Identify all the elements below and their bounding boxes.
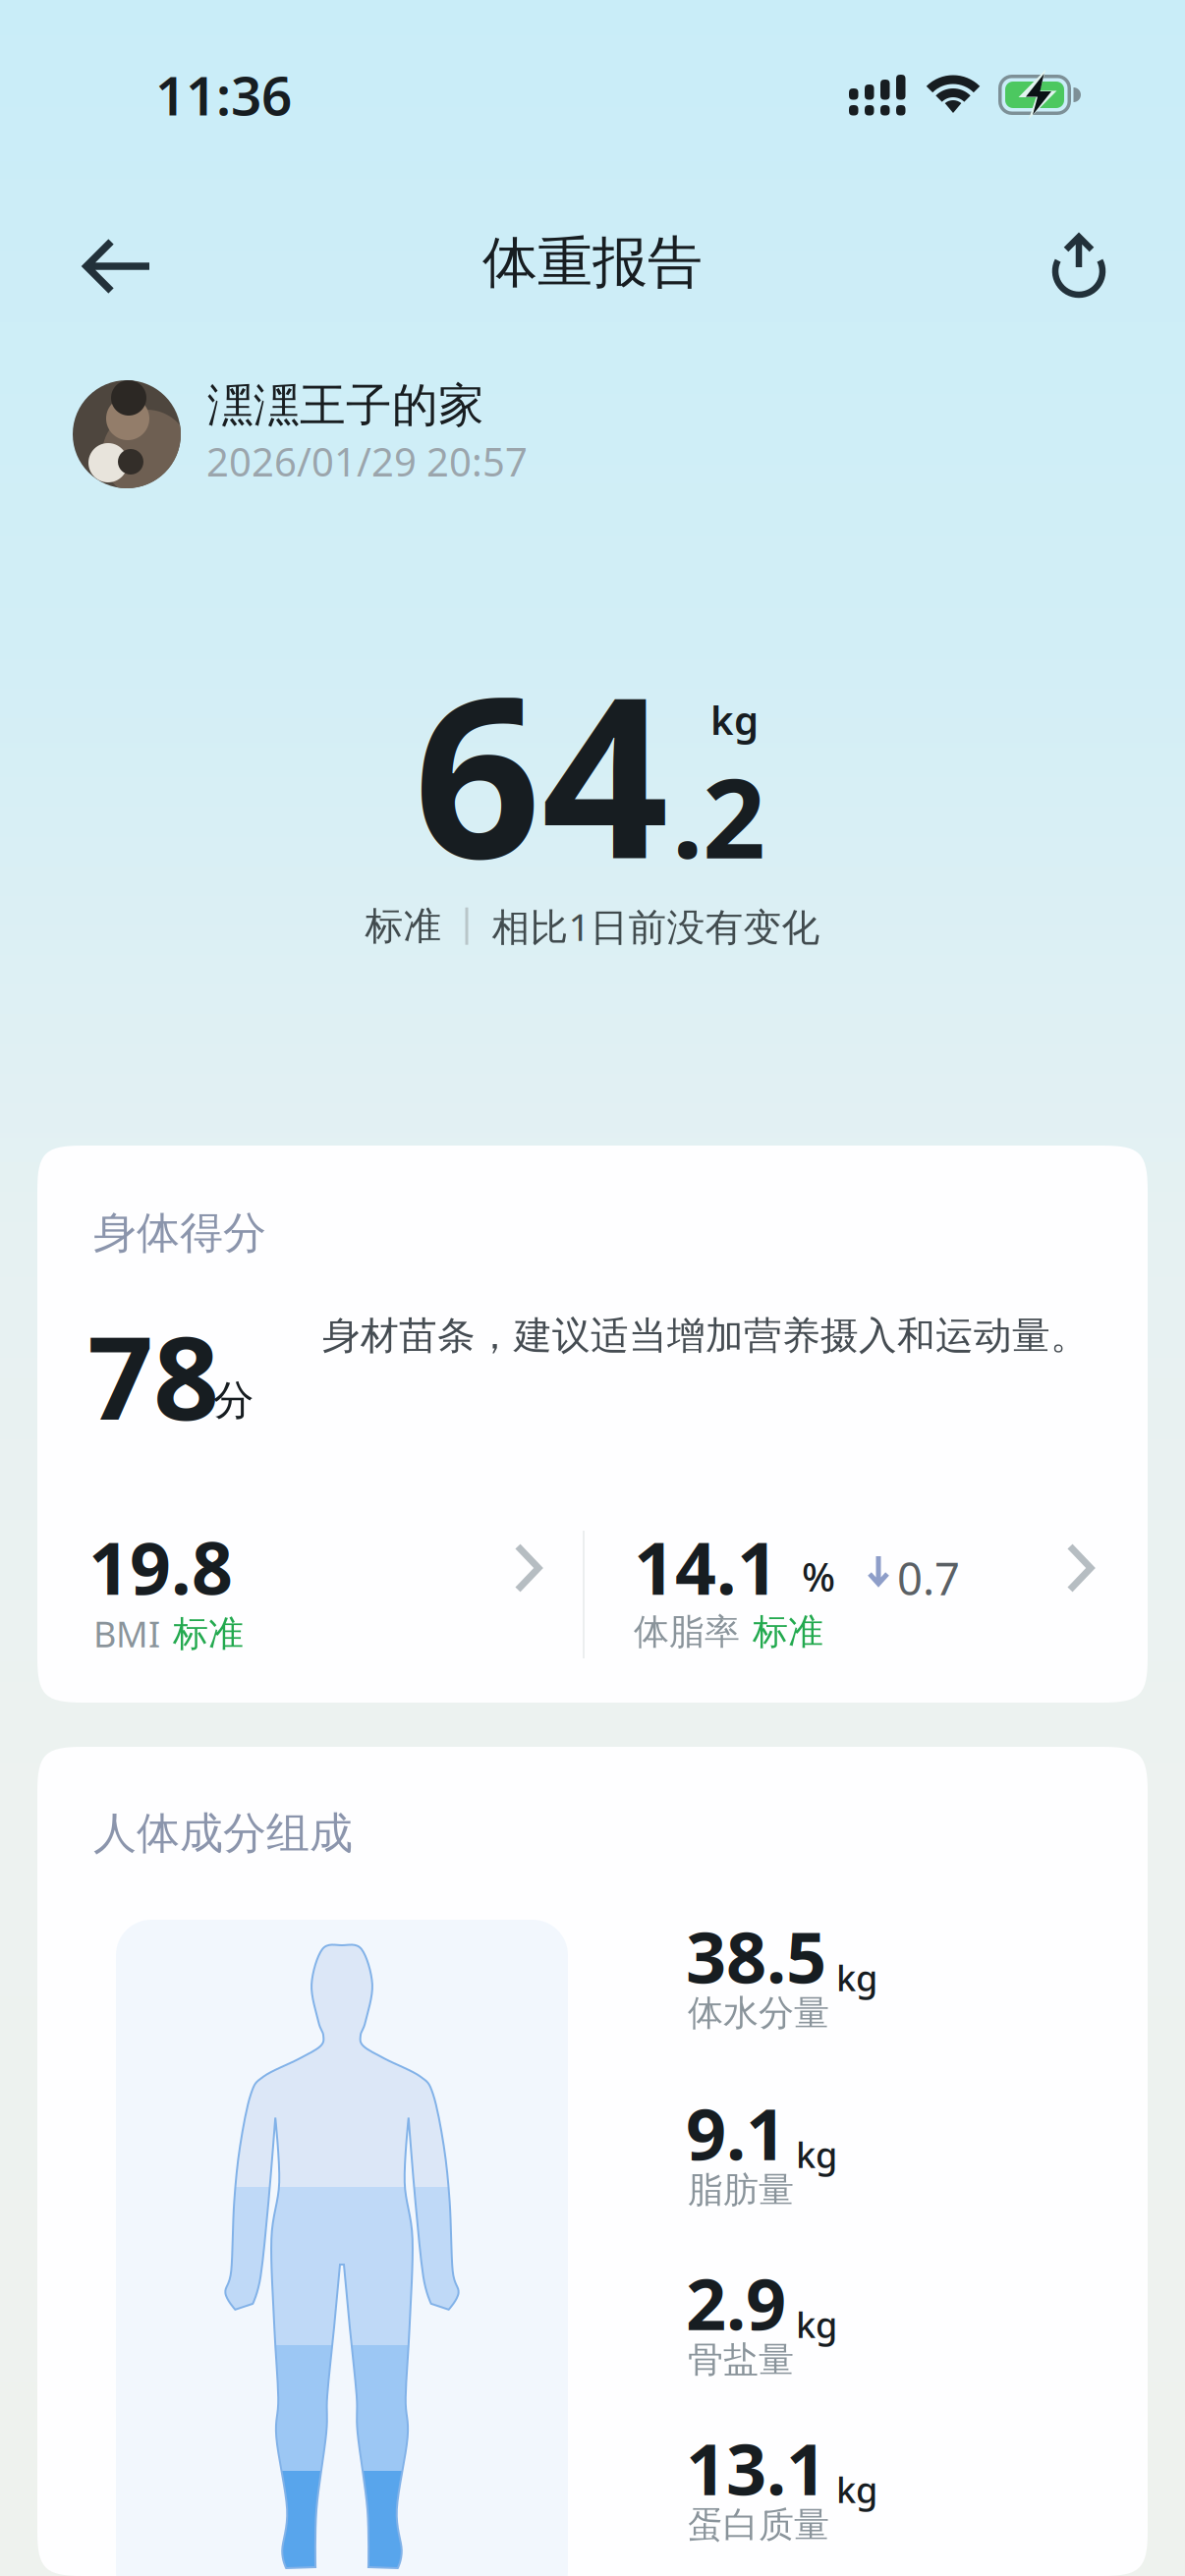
staticText: % bbox=[802, 1550, 835, 1602]
staticText: 分 bbox=[213, 1375, 254, 1425]
staticText: 潶潶王子的家 bbox=[207, 377, 484, 434]
staticText: kg bbox=[836, 2466, 877, 2513]
staticText: 身体得分 bbox=[93, 1206, 266, 1260]
staticText: 蛋白质量 bbox=[688, 2503, 829, 2547]
staticText: 标准 bbox=[173, 1612, 244, 1655]
staticText: 0.7 bbox=[897, 1548, 960, 1607]
staticText: 人体成分组成 bbox=[93, 1807, 353, 1860]
staticText: .2 bbox=[672, 743, 765, 889]
staticText: 14.1 bbox=[634, 1519, 778, 1615]
staticText: 体脂率 bbox=[634, 1610, 740, 1654]
staticText: 体水分量 bbox=[688, 1991, 829, 2035]
button[interactable]: Back bbox=[71, 226, 163, 307]
staticText: 身材苗条，建议适当增加营养摄入和运动量。 bbox=[322, 1313, 1089, 1359]
staticText: 11:36 bbox=[155, 59, 292, 130]
staticText: 脂肪量 bbox=[688, 2168, 794, 2212]
staticText: 骨盐量 bbox=[688, 2338, 794, 2382]
staticText: kg bbox=[796, 2301, 837, 2348]
staticText: 38.5 bbox=[686, 1909, 826, 2003]
staticText: 13.1 bbox=[686, 2421, 826, 2515]
staticText: 78 bbox=[87, 1299, 219, 1452]
staticText: 9.1 bbox=[686, 2086, 786, 2180]
staticText: 64 bbox=[414, 624, 669, 920]
staticText: 体重报告 bbox=[482, 229, 703, 297]
button[interactable]: Share bbox=[1042, 222, 1116, 307]
staticText: 2026/01/29 20:57 bbox=[206, 435, 528, 487]
staticText: 标准 bbox=[365, 903, 442, 949]
staticText: 2.9 bbox=[686, 2256, 786, 2350]
button[interactable]: 19.8 bbox=[37, 1499, 583, 1696]
staticText: kg bbox=[710, 694, 759, 746]
staticText: BMI bbox=[93, 1610, 160, 1657]
staticText: 标准 bbox=[753, 1610, 823, 1654]
staticText: kg bbox=[796, 2131, 837, 2178]
button[interactable]: 14.1 bbox=[585, 1499, 1148, 1696]
staticText: 19.8 bbox=[88, 1519, 233, 1615]
staticText: 相比1日前没有变化 bbox=[492, 901, 820, 951]
staticText: kg bbox=[836, 1954, 877, 2001]
